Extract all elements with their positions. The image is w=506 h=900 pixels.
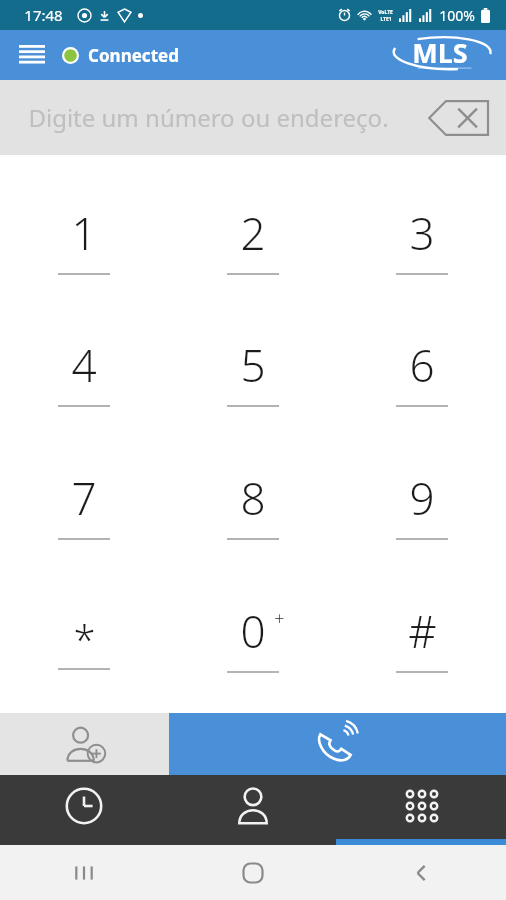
- button[interactable]: 9: [337, 437, 506, 570]
- staticText: 7: [71, 468, 97, 528]
- staticText: 9: [409, 468, 435, 528]
- staticText: Digite um número ou endereço.: [28, 101, 389, 134]
- button[interactable]: Keypad: [337, 775, 506, 845]
- button[interactable]: MLS Wireless: [384, 33, 496, 77]
- staticText: 100%: [439, 6, 475, 25]
- button[interactable]: Back: [337, 845, 506, 900]
- button[interactable]: 8: [168, 437, 337, 570]
- button[interactable]: Backspace: [422, 92, 494, 144]
- staticText: *: [73, 612, 96, 666]
- button[interactable]: 7: [0, 437, 168, 570]
- button[interactable]: Recent calls: [0, 775, 168, 845]
- staticText: 0: [240, 601, 266, 661]
- staticText: 2: [240, 203, 266, 263]
- button[interactable]: 1: [0, 173, 168, 305]
- staticText: 17:48: [24, 5, 63, 25]
- staticText: 3: [409, 203, 435, 263]
- button[interactable]: Recents: [0, 845, 168, 900]
- button[interactable]: Home: [168, 845, 337, 900]
- button[interactable]: 3: [337, 173, 506, 305]
- staticText: LTE1: [380, 16, 392, 23]
- button[interactable]: 6: [337, 305, 506, 437]
- staticText: 8: [240, 468, 266, 528]
- button[interactable]: Contacts: [168, 775, 337, 845]
- button[interactable]: *: [0, 570, 168, 703]
- button[interactable]: Call: [169, 713, 506, 775]
- button[interactable]: 5: [168, 305, 337, 437]
- staticText: 5: [240, 335, 266, 395]
- button[interactable]: Add contact: [0, 713, 169, 775]
- staticText: +: [274, 606, 285, 631]
- staticText: #: [408, 601, 437, 661]
- staticText: 1: [71, 203, 97, 263]
- button[interactable]: 2: [168, 173, 337, 305]
- staticText: VoLTE: [378, 9, 393, 16]
- staticText: 4: [71, 335, 97, 395]
- staticText: MLS: [412, 34, 468, 71]
- staticText: 6: [409, 335, 435, 395]
- button[interactable]: Menu: [12, 35, 52, 75]
- staticText: Connected: [88, 44, 179, 67]
- button[interactable]: 0: [168, 570, 337, 703]
- button[interactable]: 4: [0, 305, 168, 437]
- button[interactable]: #: [337, 570, 506, 703]
